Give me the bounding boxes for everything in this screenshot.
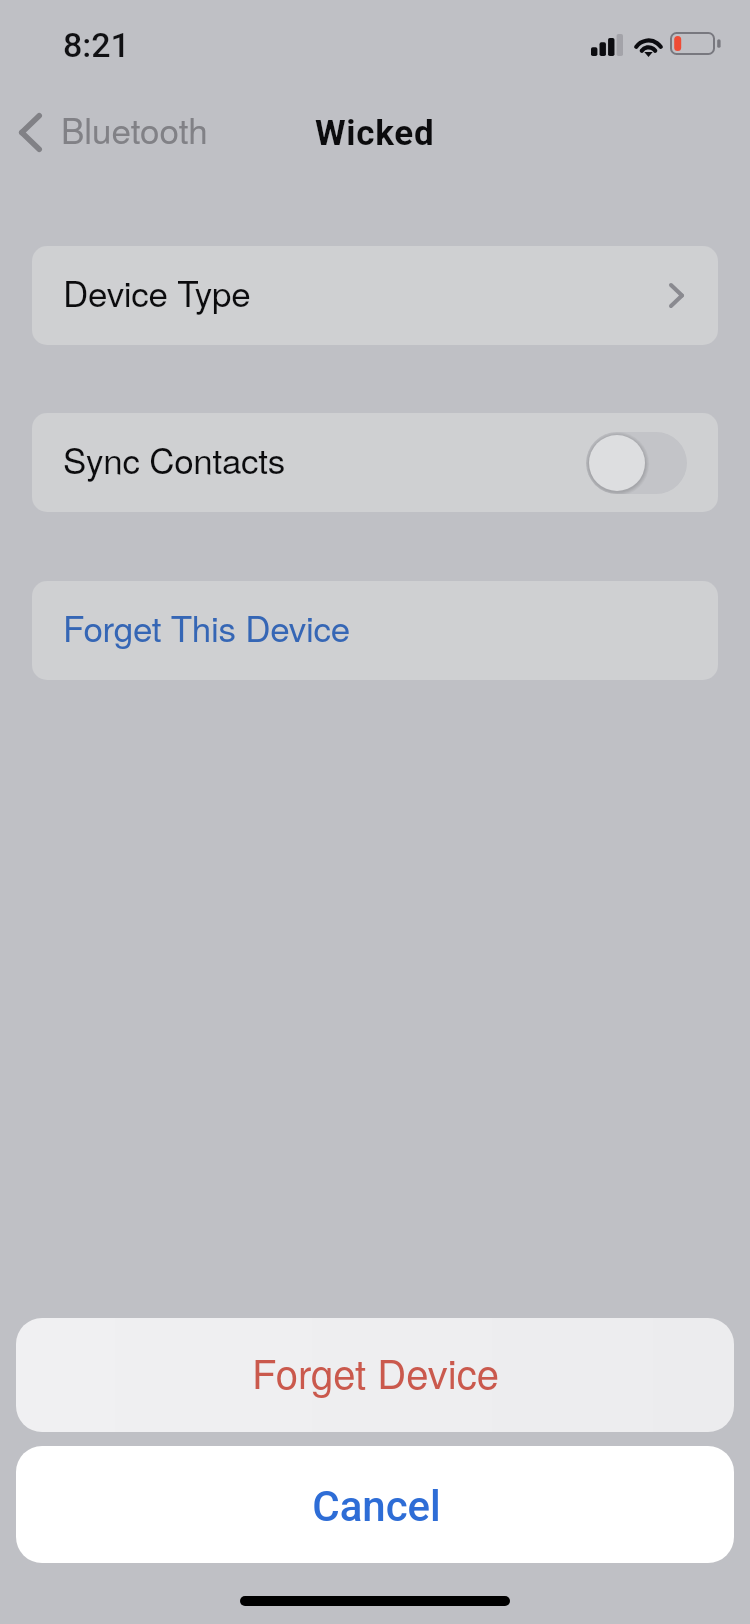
button[interactable]: Forget This Device xyxy=(32,581,718,680)
staticText: Forget Device xyxy=(252,1343,499,1400)
staticText: Cancel xyxy=(312,1482,441,1531)
button[interactable]: Device Type xyxy=(32,246,718,345)
button[interactable]: Forget Device xyxy=(16,1318,734,1432)
staticText: Forget This Device xyxy=(63,602,350,652)
staticText: Wicked xyxy=(315,113,435,154)
other: Open Device Type xyxy=(669,283,684,308)
staticText: Device Type xyxy=(63,267,251,317)
button[interactable]: Sync Contacts, off xyxy=(586,432,687,494)
staticText: Sync Contacts xyxy=(63,434,286,484)
staticText: Bluetooth xyxy=(61,104,208,154)
button[interactable]: Back to Bluetooth xyxy=(0,99,220,165)
button[interactable]: Sync Contacts xyxy=(32,413,718,512)
button[interactable]: Cancel xyxy=(16,1446,734,1563)
staticText: 8:21 xyxy=(63,25,130,65)
